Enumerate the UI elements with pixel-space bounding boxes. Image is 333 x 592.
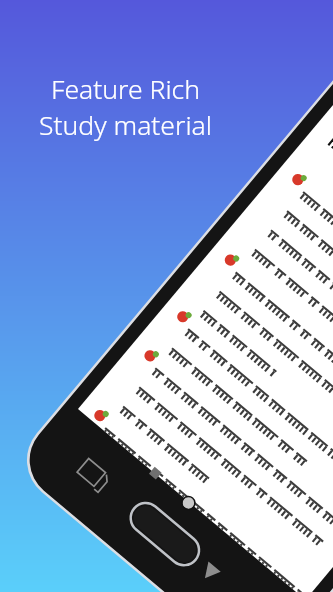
staticText: Feature Rich xyxy=(51,71,200,107)
staticText: Study material xyxy=(39,107,212,143)
